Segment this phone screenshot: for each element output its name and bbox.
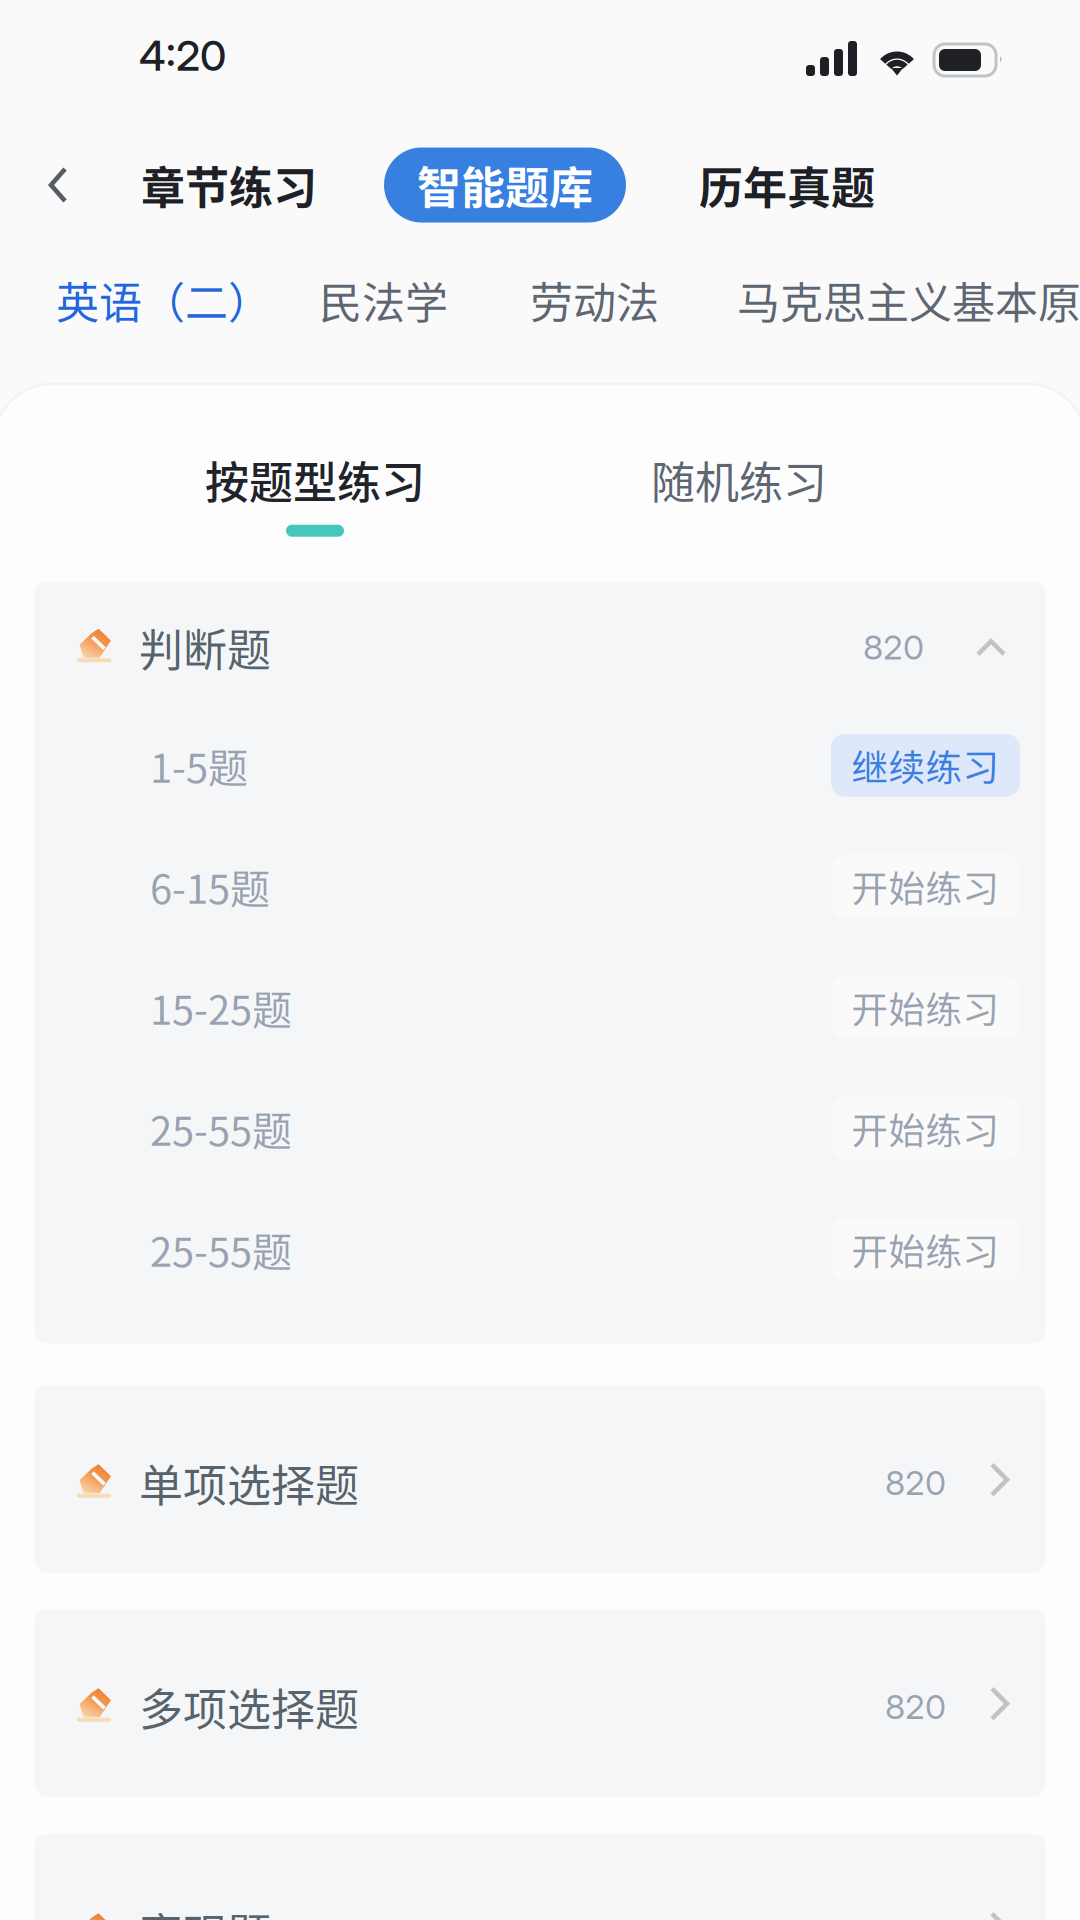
button[interactable]: 智能题库 xyxy=(384,147,626,222)
staticText: 按题型练习 xyxy=(205,448,425,512)
staticText: 开始练习 xyxy=(851,860,999,913)
button[interactable]: 客观题 xyxy=(34,1834,1046,1920)
button[interactable]: 劳动法 xyxy=(530,269,659,331)
staticText: 820 xyxy=(885,1462,946,1503)
staticText: 6-15题 xyxy=(150,857,270,915)
button[interactable]: 民法学 xyxy=(319,269,448,331)
button[interactable]: 随机练习 xyxy=(599,448,879,537)
staticText: 劳动法 xyxy=(530,269,659,331)
staticText: 1-5题 xyxy=(150,736,248,794)
button[interactable]: 按题型练习 xyxy=(205,448,425,537)
button[interactable]: 章节练习 xyxy=(86,130,384,240)
staticText: 开始练习 xyxy=(851,1223,999,1276)
staticText: 多项选择题 xyxy=(139,1675,359,1739)
staticText: 客观题 xyxy=(139,1900,271,1920)
staticText: 历年真题 xyxy=(699,153,875,217)
staticText: 随机练习 xyxy=(651,448,827,512)
button[interactable]: 英语（二） xyxy=(56,269,271,331)
staticText: 民法学 xyxy=(319,269,448,331)
staticText: 单项选择题 xyxy=(139,1451,359,1515)
button[interactable]: 开始练习 xyxy=(831,1218,1020,1281)
staticText: 15-25题 xyxy=(150,978,292,1036)
button[interactable]: 开始练习 xyxy=(831,1097,1020,1160)
button[interactable]: 判断题 xyxy=(34,582,1046,705)
staticText: 英语（二） xyxy=(56,269,271,331)
staticText: 开始练习 xyxy=(851,1102,999,1155)
button[interactable]: 马克思主义基本原理概论 xyxy=(737,269,1080,331)
staticText: 25-55题 xyxy=(150,1220,292,1278)
button[interactable]: 开始练习 xyxy=(831,976,1020,1039)
staticText: 判断题 xyxy=(139,615,271,679)
staticText: 智能题库 xyxy=(417,153,593,217)
staticText: 马克思主义基本原理概论 xyxy=(737,269,1080,331)
staticText: 820 xyxy=(885,1686,946,1727)
staticText: 章节练习 xyxy=(141,153,317,217)
staticText: 4:20 xyxy=(139,30,226,81)
staticText: 开始练习 xyxy=(851,981,999,1034)
staticText: 820 xyxy=(863,627,924,668)
button[interactable]: 单项选择题 xyxy=(34,1385,1046,1573)
button[interactable]: Back xyxy=(30,130,86,240)
button[interactable]: 历年真题 xyxy=(626,130,875,240)
button[interactable]: 开始练习 xyxy=(831,855,1020,918)
button[interactable]: 多项选择题 xyxy=(34,1609,1046,1797)
staticText: 25-55题 xyxy=(150,1099,292,1157)
staticText: 继续练习 xyxy=(851,739,999,792)
button[interactable]: 继续练习 xyxy=(831,734,1020,797)
